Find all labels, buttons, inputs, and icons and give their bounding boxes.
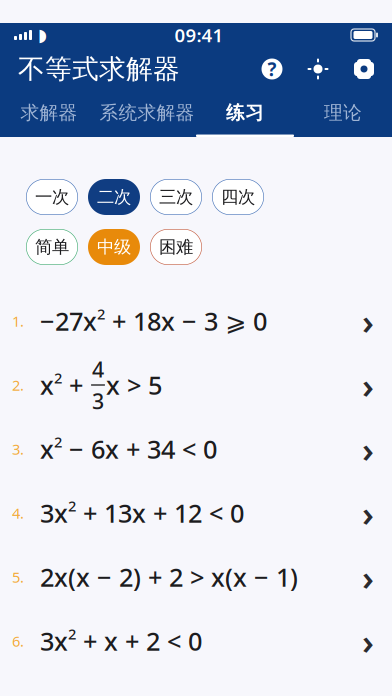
button[interactable]: 系统求解器 (98, 91, 196, 137)
staticText: x (233, 560, 247, 594)
staticText: − 3 ⩾ 0 (175, 304, 267, 338)
staticText: 2 (40, 560, 54, 594)
staticText: 系统求解器 (99, 101, 194, 124)
staticText: + 12 < 0 (146, 496, 244, 530)
staticText: x (104, 624, 118, 658)
staticText: › (362, 490, 374, 536)
staticText: 2 (68, 624, 76, 644)
staticText: ◗ (38, 25, 47, 45)
button[interactable]: 困难 (150, 229, 202, 265)
staticText: › (362, 298, 374, 344)
staticText: ? (267, 57, 276, 81)
staticText: 3 (40, 624, 54, 658)
staticText: 求解器 (20, 101, 77, 124)
staticText: 练习 (226, 101, 264, 124)
button[interactable]: 练习 (196, 91, 294, 137)
button[interactable]: Help (260, 57, 284, 81)
button[interactable]: 5. (0, 545, 392, 609)
button[interactable]: 1. (0, 289, 392, 353)
staticText: − 2) + 2 > (90, 560, 211, 594)
staticText: x (40, 368, 54, 402)
staticText: 09:41 (174, 23, 223, 47)
staticText: x (132, 496, 146, 530)
staticText: −27 (40, 304, 83, 338)
staticText: ( (68, 560, 76, 594)
staticText: x (54, 496, 68, 530)
staticText: 2. (12, 375, 24, 395)
staticText: 4. (12, 503, 24, 523)
staticText: › (362, 554, 374, 600)
staticText: 一次 (35, 186, 69, 208)
staticText: + (62, 368, 90, 402)
staticText: 6. (12, 631, 24, 651)
button[interactable]: 中级 (88, 229, 140, 265)
staticText: 3. (12, 439, 24, 459)
button[interactable]: Brightness (306, 57, 330, 81)
staticText: 2 (97, 304, 105, 324)
staticText: + 18 (105, 304, 161, 338)
staticText: x (106, 368, 120, 402)
button[interactable]: 二次 (88, 179, 140, 215)
staticText: 5. (12, 567, 24, 587)
staticText: > 5 (120, 368, 162, 402)
staticText: x (83, 304, 97, 338)
staticText: x (105, 432, 119, 466)
staticText: 理论 (324, 101, 362, 124)
staticText: 困难 (159, 236, 193, 258)
staticText: + (76, 624, 104, 658)
staticText: › (362, 362, 374, 408)
staticText: x (40, 432, 54, 466)
staticText: 中级 (97, 236, 131, 258)
button[interactable]: Settings (352, 57, 376, 81)
staticText: 不等式求解器 (18, 53, 180, 85)
button[interactable]: 4. (0, 481, 392, 545)
staticText: 2 (54, 432, 62, 452)
staticText: 二次 (97, 186, 131, 208)
staticText: + 34 < 0 (119, 432, 217, 466)
staticText: 3 (40, 496, 54, 530)
staticText: − 6 (62, 432, 105, 466)
staticText: − 1) (247, 560, 298, 594)
button[interactable]: 简单 (26, 229, 78, 265)
staticText: x (211, 560, 225, 594)
staticText: x (76, 560, 90, 594)
staticText: x (161, 304, 175, 338)
staticText: 3 (92, 387, 104, 415)
staticText: › (362, 426, 374, 472)
staticText: 2 (54, 368, 62, 388)
button[interactable]: 四次 (212, 179, 264, 215)
staticText: 三次 (159, 186, 193, 208)
button[interactable]: 三次 (150, 179, 202, 215)
button[interactable]: 一次 (26, 179, 78, 215)
staticText: 4 (92, 355, 104, 383)
button[interactable]: 2. (0, 353, 392, 417)
staticText: 简单 (35, 236, 69, 258)
button[interactable]: 理论 (294, 91, 392, 137)
staticText: 2 (68, 496, 76, 516)
staticText: 1. (12, 311, 24, 331)
staticText: ( (225, 560, 233, 594)
staticText: › (362, 618, 374, 664)
button[interactable]: 3. (0, 417, 392, 481)
staticText: x (54, 560, 68, 594)
button[interactable]: 6. (0, 609, 392, 673)
staticText: + 13 (76, 496, 132, 530)
staticText: + 2 < 0 (118, 624, 202, 658)
staticText: 四次 (221, 186, 255, 208)
button[interactable]: 求解器 (0, 91, 98, 137)
staticText: x (54, 624, 68, 658)
